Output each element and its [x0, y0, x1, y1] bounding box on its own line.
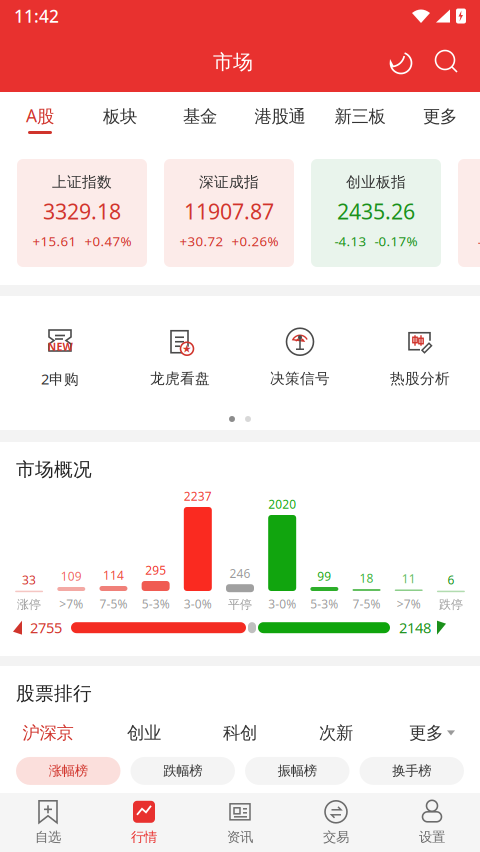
staticText: -0.17%	[374, 232, 417, 250]
staticText: 资讯	[227, 829, 253, 845]
staticText: 创业	[127, 722, 161, 744]
button[interactable]: 港股通	[240, 92, 320, 141]
staticText: 更多	[423, 106, 457, 127]
staticText: 设置	[419, 829, 445, 845]
staticText: 科创	[223, 722, 257, 744]
button[interactable]: 基金	[160, 92, 240, 141]
button[interactable]: 深证成指	[164, 159, 294, 267]
staticText: 109	[61, 568, 82, 584]
staticText: 跌幅榜	[163, 763, 202, 779]
staticText: 市场	[213, 50, 253, 74]
button[interactable]: 换手榜	[359, 757, 464, 785]
staticText: >7%	[397, 596, 421, 612]
staticText: 涨幅榜	[49, 763, 88, 779]
staticText: 决策信号	[270, 370, 330, 388]
staticText: 涨停	[17, 597, 41, 612]
staticText: 11907.87	[184, 197, 274, 225]
staticText: 换手榜	[392, 763, 431, 779]
button[interactable]: 交易	[288, 793, 384, 852]
staticText: 更多	[409, 722, 443, 744]
staticText: 2148	[399, 618, 431, 637]
staticText: 3-0%	[184, 596, 212, 612]
staticText: 创业板指	[346, 173, 406, 191]
button[interactable]: 创业	[96, 711, 192, 755]
staticText: 板块	[103, 106, 137, 127]
staticText: 11	[402, 571, 416, 586]
staticText: A股	[26, 104, 54, 127]
staticText: 114	[103, 567, 124, 583]
staticText: 5-3%	[310, 596, 338, 612]
staticText: >7%	[59, 596, 83, 612]
staticText: 跌停	[439, 597, 463, 612]
staticText: 股票排行	[16, 682, 92, 705]
button[interactable]: 行情	[96, 793, 192, 852]
staticText: -4.13	[334, 232, 366, 250]
staticText: 295	[145, 562, 166, 578]
staticText: 自选	[35, 829, 61, 845]
staticText: 2435.26	[337, 197, 415, 225]
staticText: 3-0%	[268, 596, 296, 612]
button[interactable]: Search	[424, 39, 468, 85]
staticText: 18	[359, 570, 373, 586]
button[interactable]: 新三板	[320, 92, 400, 141]
button[interactable]: ★	[120, 328, 240, 388]
staticText: +15.61	[32, 232, 76, 250]
staticText: 热股分析	[390, 370, 450, 388]
button[interactable]: 跌幅榜	[130, 757, 235, 785]
staticText: 振幅榜	[278, 763, 317, 779]
staticText: +0.26%	[231, 232, 278, 250]
staticText: 7-5%	[352, 596, 380, 612]
button[interactable]: 更多	[384, 711, 480, 755]
staticText: 3329.18	[43, 197, 121, 225]
staticText: NEW	[47, 339, 72, 354]
staticText: 行情	[131, 829, 157, 845]
staticText: 上证指数	[52, 173, 112, 191]
button[interactable]: 自选	[0, 793, 96, 852]
button[interactable]: 科创	[192, 711, 288, 755]
staticText: 沪深京	[22, 722, 73, 744]
staticText: 交易	[323, 829, 349, 845]
staticText: 99	[317, 568, 331, 584]
staticText: 5-3%	[142, 596, 170, 612]
staticText: 2755	[30, 618, 62, 637]
staticText: 市场概况	[16, 458, 92, 481]
staticText: 2申购	[41, 369, 79, 388]
staticText: 246	[229, 565, 250, 581]
button[interactable]: Night mode	[378, 39, 424, 85]
staticText: 2237	[184, 488, 212, 504]
staticText: 2020	[268, 496, 296, 512]
staticText: 港股通	[254, 106, 305, 127]
staticText: ★	[182, 343, 192, 355]
button[interactable]: 更多	[400, 92, 480, 141]
button[interactable]: 北证50	[458, 159, 480, 267]
staticText: 7-5%	[99, 596, 127, 612]
staticText: +0.47%	[84, 232, 131, 250]
staticText: 11:42	[14, 4, 59, 27]
staticText: 新三板	[334, 106, 385, 127]
staticText: 基金	[183, 106, 217, 127]
staticText: 次新	[319, 722, 353, 744]
staticText: 平停	[228, 597, 252, 612]
button[interactable]: NEW	[0, 327, 120, 388]
staticText: 6	[447, 572, 454, 588]
button[interactable]: A股	[0, 92, 80, 141]
button[interactable]: 振幅榜	[245, 757, 349, 785]
button[interactable]: 设置	[384, 793, 480, 852]
button[interactable]: 板块	[80, 92, 160, 141]
button[interactable]: 资讯	[192, 793, 288, 852]
staticText: 龙虎看盘	[150, 370, 210, 388]
button[interactable]: 沪深京	[0, 711, 96, 755]
button[interactable]: 次新	[288, 711, 384, 755]
button[interactable]: 涨幅榜	[16, 757, 120, 785]
button[interactable]: 上证指数	[17, 159, 147, 267]
staticText: +6.11	[477, 234, 480, 251]
button[interactable]: 决策信号	[240, 328, 360, 388]
button[interactable]: 热股分析	[360, 328, 480, 388]
staticText: +30.72	[179, 232, 223, 250]
staticText: 深证成指	[199, 173, 259, 191]
button[interactable]: 创业板指	[311, 159, 441, 267]
staticText: 33	[22, 572, 36, 588]
